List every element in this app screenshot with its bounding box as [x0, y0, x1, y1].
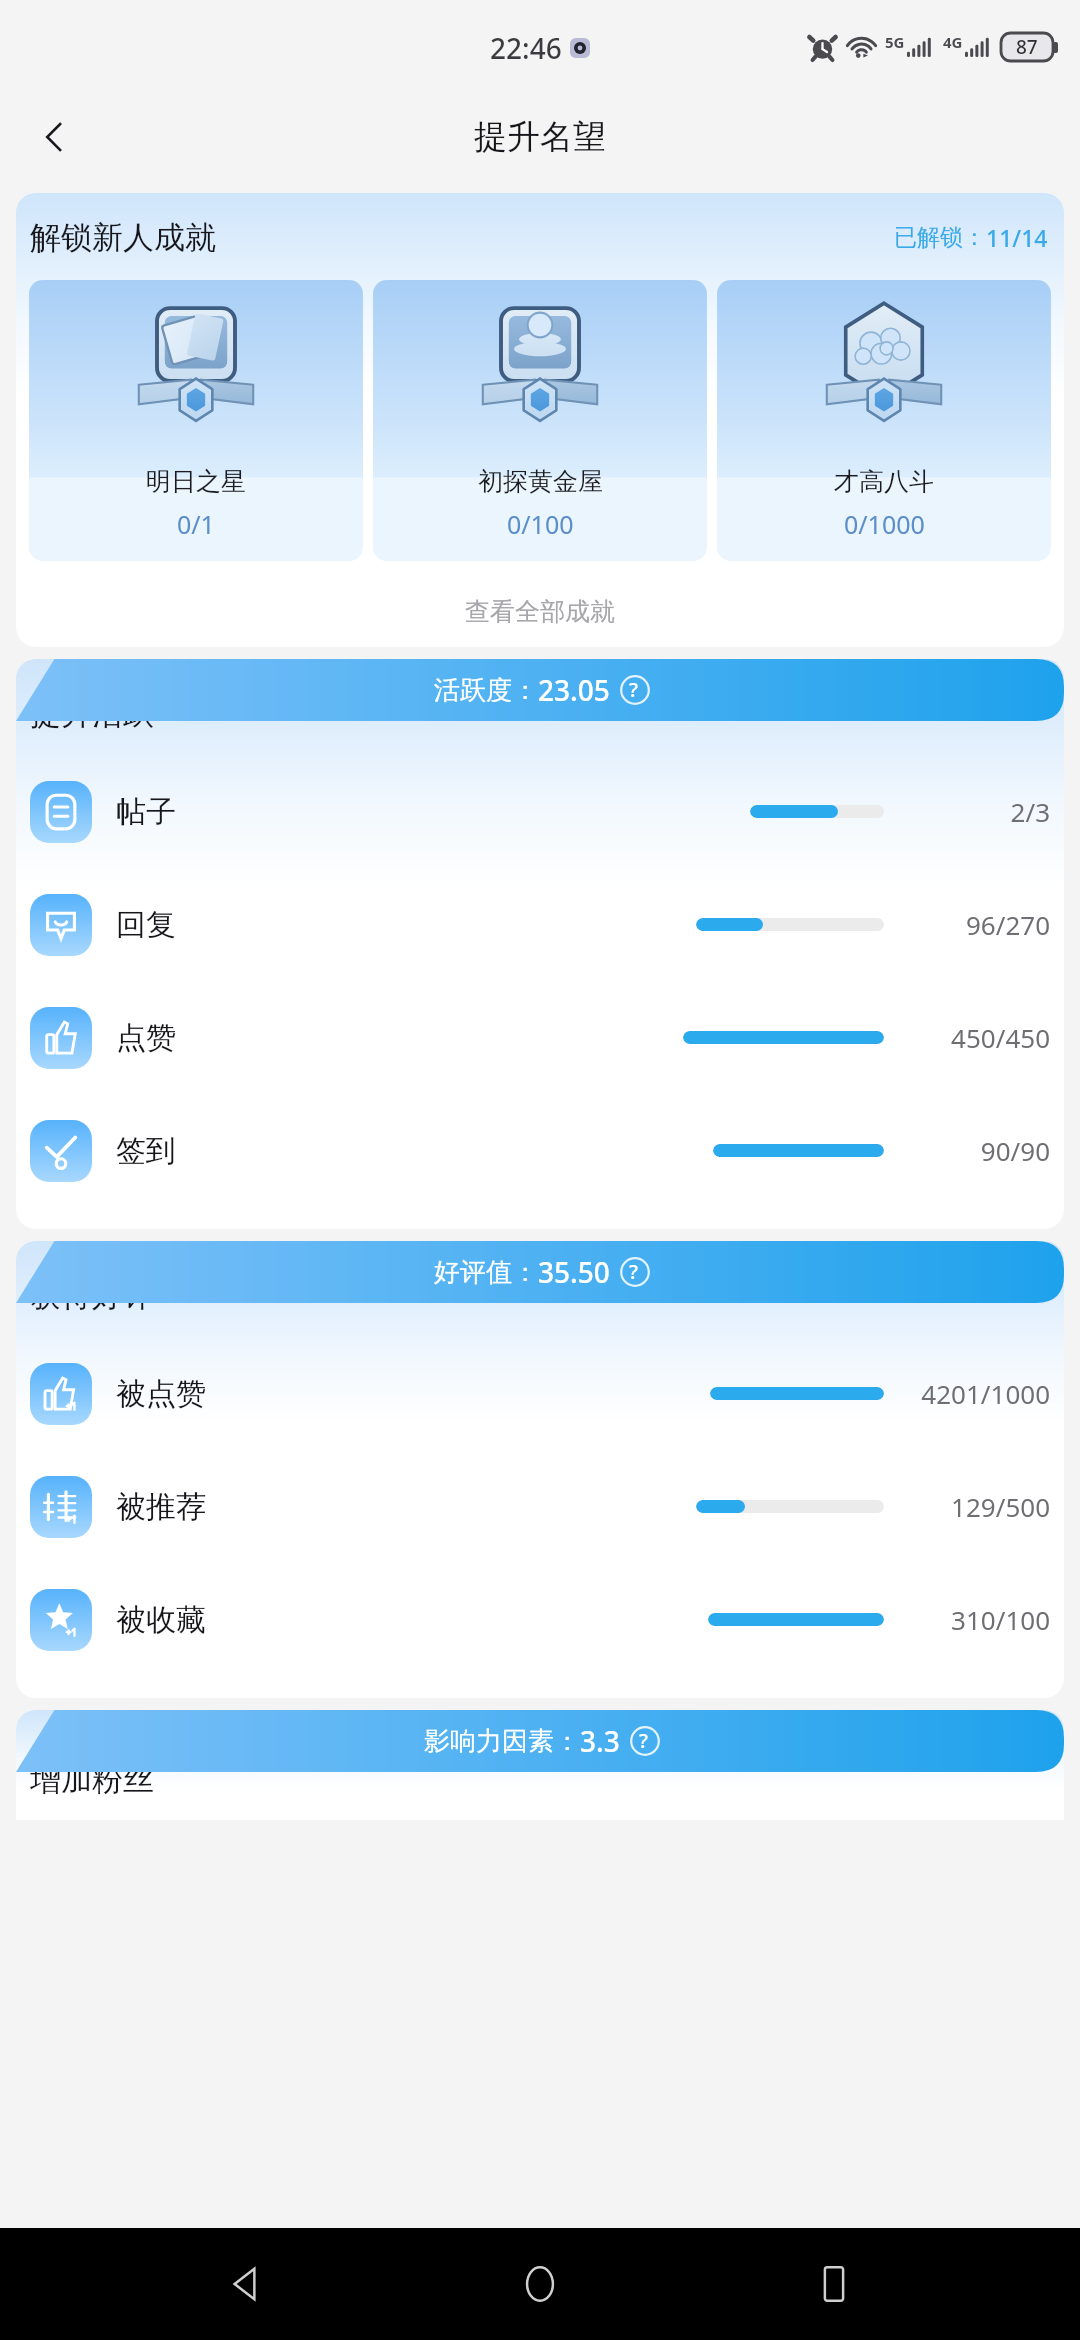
staticText: 2/3: [1010, 794, 1050, 829]
staticText: 0/100: [507, 507, 574, 541]
staticText: 35.50: [538, 1253, 610, 1291]
staticText: 22:46: [490, 29, 562, 67]
staticText: 增加粉丝: [30, 1760, 154, 1799]
button[interactable]: 被收藏: [16, 1563, 1064, 1676]
staticText: 310/100: [951, 1602, 1050, 1637]
button[interactable]: Back: [22, 105, 86, 169]
staticText: 3.3: [580, 1722, 620, 1760]
staticText: 23.05: [538, 671, 610, 709]
button[interactable]: Recents: [786, 2236, 882, 2332]
staticText: 4G: [943, 32, 963, 52]
staticText: 5G: [885, 32, 905, 52]
staticText: 11/14: [986, 222, 1048, 253]
button[interactable]: 帖子: [16, 755, 1064, 868]
staticText: ?: [639, 1727, 648, 1754]
staticText: 查看全部成就: [465, 596, 615, 627]
staticText: 被点赞: [116, 1375, 206, 1413]
staticText: 点赞: [116, 1019, 176, 1057]
button[interactable]: 初探黄金屋: [373, 280, 707, 561]
staticText: 0/1: [177, 507, 215, 541]
staticText: 被推荐: [116, 1488, 206, 1526]
button[interactable]: 影响力因素：: [16, 1710, 1064, 1772]
staticText: 初探黄金屋: [478, 466, 603, 497]
staticText: 签到: [116, 1132, 176, 1170]
staticText: 提升活跃: [30, 694, 154, 733]
button[interactable]: 明日之星: [29, 280, 363, 561]
staticText: 影响力因素：: [424, 1725, 580, 1758]
button[interactable]: Home: [492, 2236, 588, 2332]
staticText: 0/1000: [844, 507, 925, 541]
staticText: 获得好评: [30, 1276, 154, 1315]
staticText: 129/500: [951, 1489, 1050, 1524]
staticText: 活跃度：: [434, 674, 538, 707]
staticText: 450/450: [951, 1020, 1050, 1055]
staticText: 提升名望: [474, 116, 606, 158]
button[interactable]: 已解锁：: [892, 220, 1050, 255]
staticText: ?: [629, 1258, 638, 1285]
staticText: 才高八斗: [834, 466, 934, 497]
staticText: 90/90: [980, 1133, 1050, 1168]
button[interactable]: 活跃度：: [16, 659, 1064, 721]
staticText: 回复: [116, 906, 176, 944]
staticText: 明日之星: [146, 466, 246, 497]
staticText: 4201/1000: [921, 1376, 1050, 1411]
staticText: 已解锁：: [894, 223, 986, 252]
button[interactable]: 签到: [16, 1094, 1064, 1207]
button[interactable]: 被推荐: [16, 1450, 1064, 1563]
button[interactable]: 才高八斗: [717, 280, 1051, 561]
button[interactable]: 点赞: [16, 981, 1064, 1094]
staticText: 87: [1016, 34, 1038, 60]
staticText: 帖子: [116, 793, 176, 831]
button[interactable]: 好评值：: [16, 1241, 1064, 1303]
button[interactable]: 回复: [16, 868, 1064, 981]
staticText: 被收藏: [116, 1601, 206, 1639]
button[interactable]: 查看全部成就: [16, 583, 1064, 639]
button[interactable]: Back: [198, 2236, 294, 2332]
staticText: 好评值：: [434, 1256, 538, 1289]
staticText: 解锁新人成就: [30, 218, 216, 257]
button[interactable]: 被点赞: [16, 1337, 1064, 1450]
staticText: 96/270: [965, 907, 1050, 942]
staticText: ?: [629, 676, 638, 703]
